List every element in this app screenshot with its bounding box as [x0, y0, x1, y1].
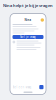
button[interactable]: Verstuur bericht: [39, 85, 43, 89]
staticText: Nina helpt je bij je vragen: [3, 3, 53, 8]
staticText: Nina: [24, 18, 31, 22]
button[interactable]: Stel je vraag: [12, 35, 43, 39]
staticText: Stel een vraag: [12, 85, 31, 89]
staticText: Stel je vraag: [20, 35, 36, 39]
